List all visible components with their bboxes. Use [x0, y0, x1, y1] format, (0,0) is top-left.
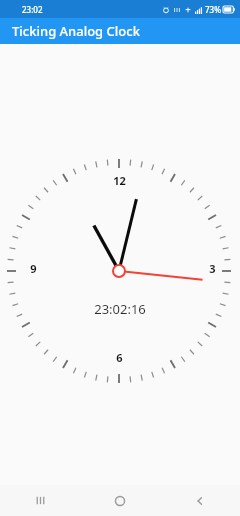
button[interactable]: Recent apps	[0, 485, 80, 516]
button[interactable]: Back	[160, 485, 240, 516]
staticText: 73%	[205, 4, 221, 15]
staticText: 12	[113, 173, 126, 187]
staticText: 23:02	[22, 4, 43, 15]
staticText: 23:02:16	[94, 300, 146, 318]
button[interactable]: Home	[80, 485, 160, 516]
staticText: 3	[209, 261, 216, 275]
staticText: Ticking Analog Clock	[12, 22, 140, 40]
staticText: 9	[30, 261, 37, 275]
staticText: 6	[116, 350, 123, 364]
button[interactable]: Ticking Analog Clock	[0, 18, 240, 44]
